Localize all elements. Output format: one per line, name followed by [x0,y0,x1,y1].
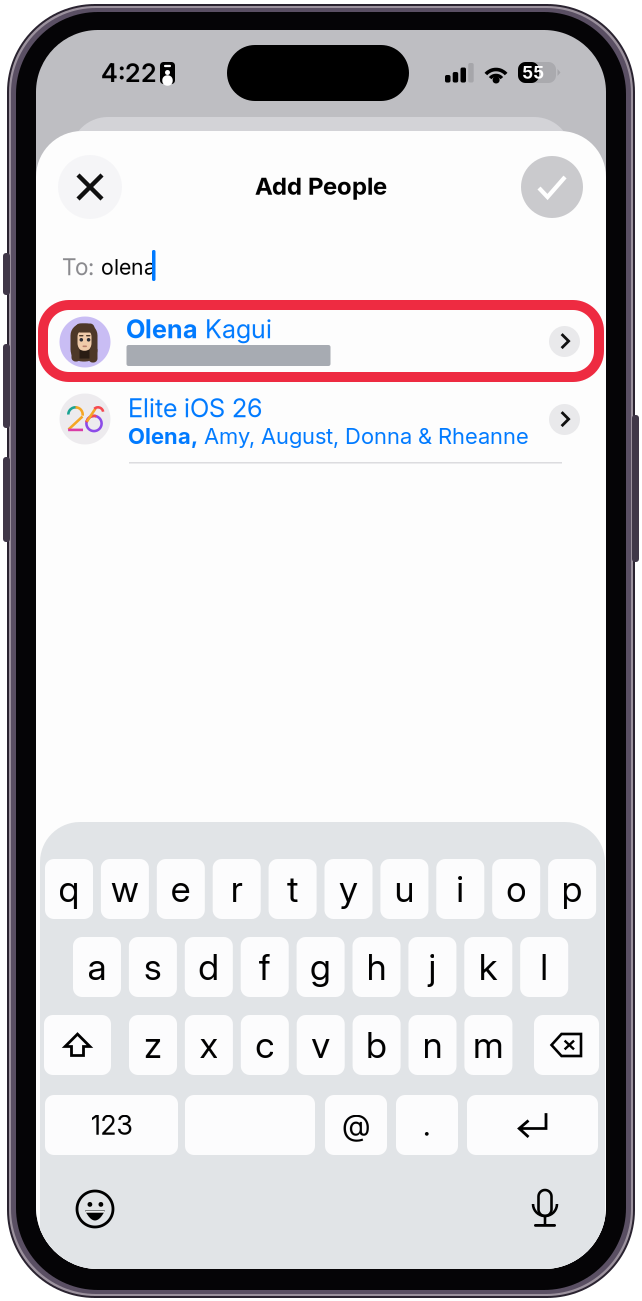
button[interactable]: q [45,859,93,919]
staticText: l [540,945,548,989]
button[interactable]: Done [520,155,584,219]
button[interactable]: Close [58,155,122,219]
staticText: x [199,1023,218,1067]
button[interactable]: x [185,1015,233,1075]
staticText: c [255,1023,274,1067]
staticText: Olena, [128,423,198,449]
button[interactable]: e [157,859,205,919]
button[interactable]: g [297,937,345,997]
button[interactable]: m [464,1015,512,1075]
button[interactable]: r [213,859,261,919]
button[interactable]: s [129,937,177,997]
button[interactable]: l [520,937,568,997]
staticText: Elite iOS 26 [128,393,262,423]
staticText: m [473,1023,504,1067]
button[interactable]: t [269,859,317,919]
staticText: s [144,945,162,989]
button[interactable]: j [408,937,456,997]
staticText: v [311,1023,330,1067]
staticText: 55 [522,62,544,83]
staticText: t [287,867,298,911]
staticText: o [506,867,526,911]
staticText: w [111,867,139,911]
button[interactable]: 123 [45,1095,178,1155]
staticText: z [144,1023,162,1067]
button[interactable]: h [352,937,400,997]
button[interactable]: Return [467,1095,598,1155]
staticText: f [259,945,271,989]
staticText: a [87,945,106,989]
button[interactable]: Delete [534,1015,599,1075]
button[interactable]: z [129,1015,177,1075]
button[interactable]: i [436,859,484,919]
button[interactable]: p [548,859,596,919]
staticText: q [58,867,79,911]
staticText: d [198,945,219,989]
button[interactable]: o [492,859,540,919]
button[interactable]: f [241,937,289,997]
staticText: b [366,1023,387,1067]
button[interactable]: Elite iOS 26 [40,387,602,471]
staticText: . [423,1107,431,1143]
button[interactable]: y [324,859,372,919]
button[interactable]: Emoji [77,1191,114,1228]
button[interactable]: v [297,1015,345,1075]
button[interactable]: n [408,1015,456,1075]
staticText: n [422,1023,442,1067]
button[interactable]: w [101,859,149,919]
staticText: e [171,867,191,911]
button[interactable]: k [464,937,512,997]
staticText: @ [342,1107,370,1143]
staticText: 123 [90,1109,132,1141]
button[interactable]: a [73,937,121,997]
staticText: g [310,945,331,989]
button[interactable]: . [396,1095,458,1155]
staticText: Olena [126,314,198,344]
button[interactable]: Olena [38,300,606,382]
staticText: To: [62,253,94,281]
staticText: Amy, August, Donna & Rheanne [198,423,529,449]
button[interactable]: @ [325,1095,387,1155]
staticText: k [479,945,498,989]
staticText: y [339,867,358,911]
button[interactable]: c [241,1015,289,1075]
button[interactable]: u [380,859,428,919]
staticText: r [231,867,243,911]
button[interactable]: Shift [44,1015,111,1075]
staticText: 4:22 [101,58,157,88]
staticText: p [562,867,583,911]
staticText: olena [101,254,156,280]
staticText: u [394,867,414,911]
staticText: h [366,945,386,989]
button[interactable]: Dictation [531,1190,559,1232]
staticText: i [456,867,464,911]
staticText: j [428,945,436,989]
button[interactable]: b [353,1015,401,1075]
button[interactable]: d [185,937,233,997]
staticText: Kagui [198,314,272,344]
staticText: Add People [255,171,387,200]
